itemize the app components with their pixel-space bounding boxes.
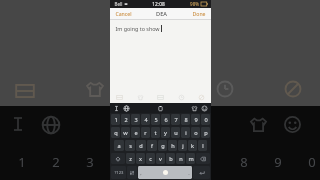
button[interactable]: 0 <box>201 114 210 125</box>
button[interactable]: q <box>111 127 120 138</box>
button[interactable]: Space <box>138 166 192 179</box>
staticText: 0 <box>204 116 208 124</box>
button[interactable]: Cancel <box>114 9 133 18</box>
button[interactable]: c <box>146 153 155 164</box>
button[interactable]: Emoji <box>201 105 208 112</box>
staticText: 9 <box>194 116 198 124</box>
button[interactable]: ?123 <box>111 166 126 179</box>
staticText: n <box>179 155 183 163</box>
button[interactable]: l <box>198 140 207 151</box>
button[interactable]: Clipboard <box>157 105 164 112</box>
staticText: o <box>194 129 198 137</box>
button[interactable]: 4 <box>141 114 150 125</box>
staticText: v <box>159 155 162 163</box>
button[interactable]: Text cursor <box>113 105 120 112</box>
staticText: Done <box>192 10 206 17</box>
button[interactable]: m <box>186 153 195 164</box>
button[interactable]: b <box>166 153 175 164</box>
button[interactable]: v <box>156 153 165 164</box>
staticText: 1 <box>114 116 118 124</box>
staticText: . <box>188 169 190 176</box>
button[interactable]: z <box>126 153 135 164</box>
button[interactable]: u <box>171 127 180 138</box>
button[interactable]: w <box>121 127 130 138</box>
staticText: 98% <box>190 1 199 7</box>
button[interactable]: i <box>181 127 190 138</box>
button[interactable]: x <box>136 153 145 164</box>
button[interactable]: d <box>136 140 146 151</box>
button[interactable]: 5 <box>151 114 160 125</box>
staticText: 1 <box>18 153 26 171</box>
staticText: k <box>191 142 194 150</box>
button[interactable]: g <box>158 140 167 151</box>
button[interactable]: 1 <box>111 114 120 125</box>
button[interactable]: a <box>114 140 124 151</box>
button[interactable]: s <box>125 140 135 151</box>
staticText: b <box>169 155 173 163</box>
button[interactable]: k <box>188 140 197 151</box>
staticText: j <box>182 142 184 150</box>
staticText: 3 <box>134 116 138 124</box>
button[interactable]: h <box>168 140 177 151</box>
staticText: c <box>149 155 152 163</box>
button[interactable]: Done <box>191 9 207 18</box>
button[interactable]: f <box>147 140 157 151</box>
staticText: 3 <box>86 153 94 171</box>
staticText: e <box>134 129 138 137</box>
button[interactable]: 7 <box>171 114 180 125</box>
staticText: x <box>139 155 142 163</box>
button[interactable]: Backspace <box>196 153 210 164</box>
staticText: m <box>188 155 194 163</box>
staticText: 7 <box>174 116 178 124</box>
staticText: 5 <box>154 116 158 124</box>
staticText: 12:08 <box>152 1 165 8</box>
staticText: Im going to show <box>115 25 160 32</box>
button[interactable]: Change language <box>123 105 130 112</box>
staticText: t <box>154 129 157 137</box>
button[interactable]: y <box>161 127 170 138</box>
staticText: q <box>114 129 118 137</box>
staticText: s <box>129 142 132 150</box>
button[interactable]: e <box>131 127 140 138</box>
staticText: g <box>161 142 165 150</box>
button[interactable]: p <box>201 127 210 138</box>
button[interactable]: Shift <box>111 153 125 164</box>
staticText: 2 <box>52 153 60 171</box>
button[interactable]: n <box>176 153 185 164</box>
button[interactable]: o <box>191 127 200 138</box>
staticText: z <box>129 155 132 163</box>
staticText: r <box>144 129 147 137</box>
staticText: Cancel <box>115 10 132 17</box>
staticText: u <box>174 129 178 137</box>
button[interactable]: j <box>178 140 187 151</box>
staticText: i <box>185 129 187 137</box>
staticText: f <box>151 142 153 150</box>
staticText: a <box>117 142 121 150</box>
staticText: d <box>139 142 143 150</box>
staticText: ?123 <box>114 170 124 176</box>
button[interactable]: Stickers <box>191 105 198 112</box>
staticText: , <box>140 169 142 176</box>
button[interactable]: 3 <box>131 114 140 125</box>
button[interactable]: 9 <box>191 114 200 125</box>
staticText: 4 <box>144 116 148 124</box>
button[interactable]: 8 <box>181 114 190 125</box>
staticText: Bell <box>113 1 124 7</box>
button[interactable]: Settings <box>127 166 137 179</box>
staticText: y <box>164 129 167 137</box>
staticText: 6 <box>164 116 168 124</box>
staticText: DEA <box>156 10 167 18</box>
button[interactable]: r <box>141 127 150 138</box>
staticText: 0 <box>308 153 316 171</box>
button[interactable]: Enter <box>193 166 210 179</box>
staticText: 9 <box>274 153 282 171</box>
staticText: 2 <box>124 116 128 124</box>
staticText: h <box>171 142 175 150</box>
staticText: 8 <box>240 153 248 171</box>
staticText: w <box>123 129 128 137</box>
staticText: l <box>202 142 204 150</box>
button[interactable]: t <box>151 127 160 138</box>
button[interactable]: 6 <box>161 114 170 125</box>
button[interactable]: 2 <box>121 114 130 125</box>
staticText: p <box>204 129 208 137</box>
